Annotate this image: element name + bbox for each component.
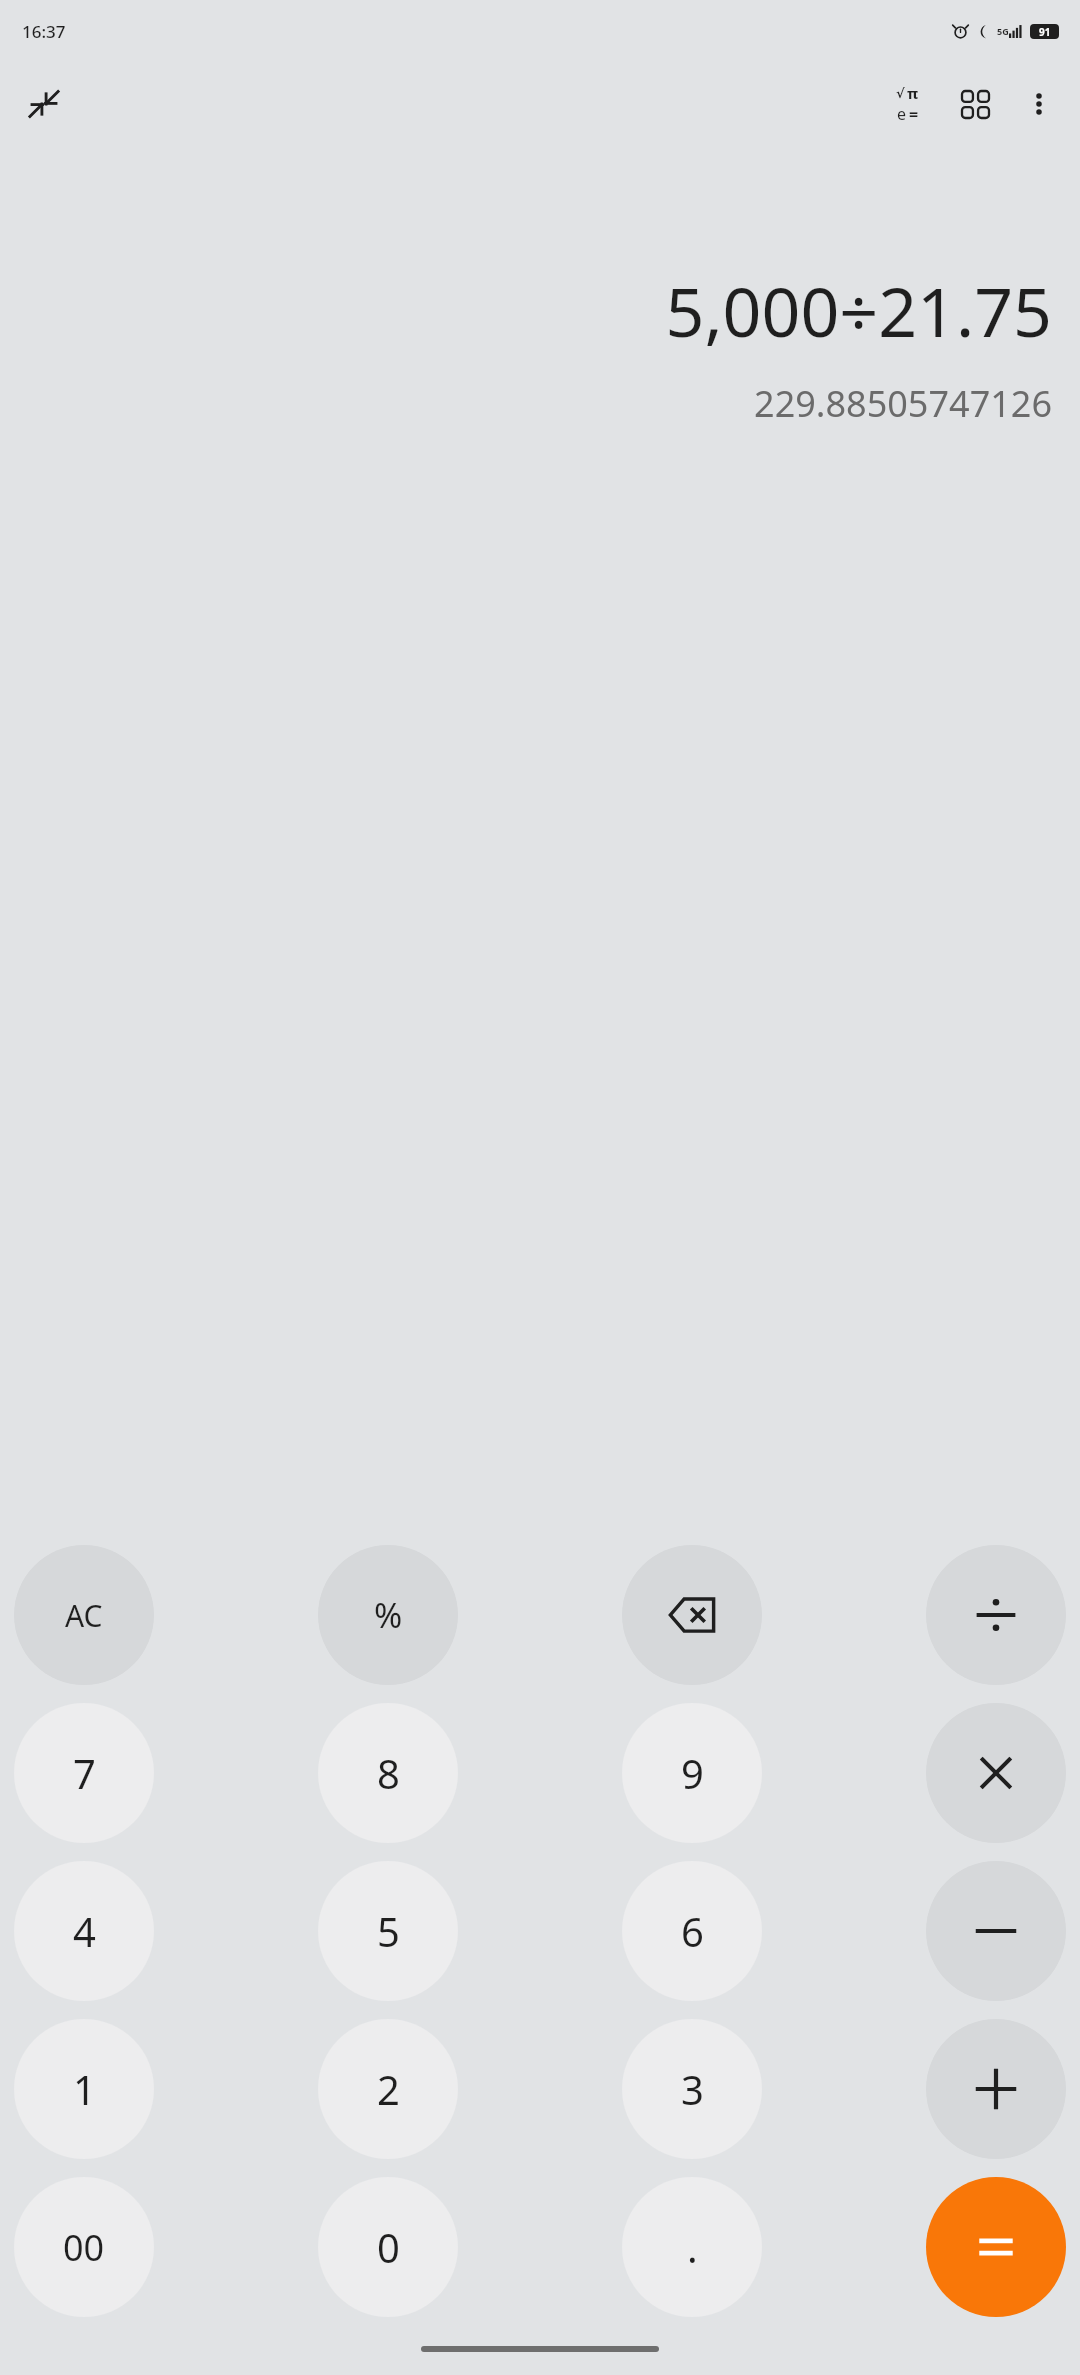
staticText: .: [687, 2220, 698, 2274]
button[interactable]: AC: [14, 1545, 154, 1685]
staticText: AC: [65, 1595, 103, 1636]
button[interactable]: 2: [318, 2019, 458, 2159]
staticText: √: [896, 86, 905, 101]
staticText: 16:37: [22, 20, 66, 43]
button[interactable]: Collapse: [18, 78, 70, 130]
staticText: 3: [681, 2062, 704, 2116]
staticText: 7: [73, 1746, 96, 1800]
button[interactable]: Divide: [926, 1545, 1066, 1685]
staticText: 8: [377, 1746, 400, 1800]
staticText: 5G: [997, 25, 1009, 37]
staticText: 2: [377, 2062, 400, 2116]
staticText: e: [897, 103, 907, 125]
staticText: 91: [1039, 25, 1051, 39]
button[interactable]: Scientific: [878, 75, 936, 133]
staticText: 6: [681, 1904, 704, 1958]
button[interactable]: Backspace: [622, 1545, 762, 1685]
button[interactable]: 3: [622, 2019, 762, 2159]
staticText: 229.88505747126: [754, 379, 1052, 428]
staticText: 4: [73, 1904, 96, 1958]
staticText: 5: [377, 1904, 400, 1958]
button[interactable]: History: [946, 75, 1004, 133]
button[interactable]: %: [318, 1545, 458, 1685]
button[interactable]: 1: [14, 2019, 154, 2159]
staticText: 0: [377, 2220, 400, 2274]
staticText: =: [909, 103, 919, 125]
button[interactable]: 5: [318, 1861, 458, 2001]
button[interactable]: 4: [14, 1861, 154, 2001]
button[interactable]: Subtract: [926, 1861, 1066, 2001]
button[interactable]: 00: [14, 2177, 154, 2317]
button[interactable]: 7: [14, 1703, 154, 1843]
staticText: %: [374, 1592, 403, 1638]
button[interactable]: More options: [1010, 75, 1068, 133]
button[interactable]: Equals: [926, 2177, 1066, 2317]
button[interactable]: Add: [926, 2019, 1066, 2159]
button[interactable]: 8: [318, 1703, 458, 1843]
button[interactable]: .: [622, 2177, 762, 2317]
staticText: 5,000÷21.75: [665, 264, 1052, 357]
staticText: 1: [73, 2062, 96, 2116]
button[interactable]: 6: [622, 1861, 762, 2001]
staticText: 9: [681, 1746, 704, 1800]
button[interactable]: 0: [318, 2177, 458, 2317]
button[interactable]: Multiply: [926, 1703, 1066, 1843]
staticText: 00: [63, 2223, 105, 2272]
button[interactable]: 9: [622, 1703, 762, 1843]
staticText: π: [907, 83, 919, 103]
